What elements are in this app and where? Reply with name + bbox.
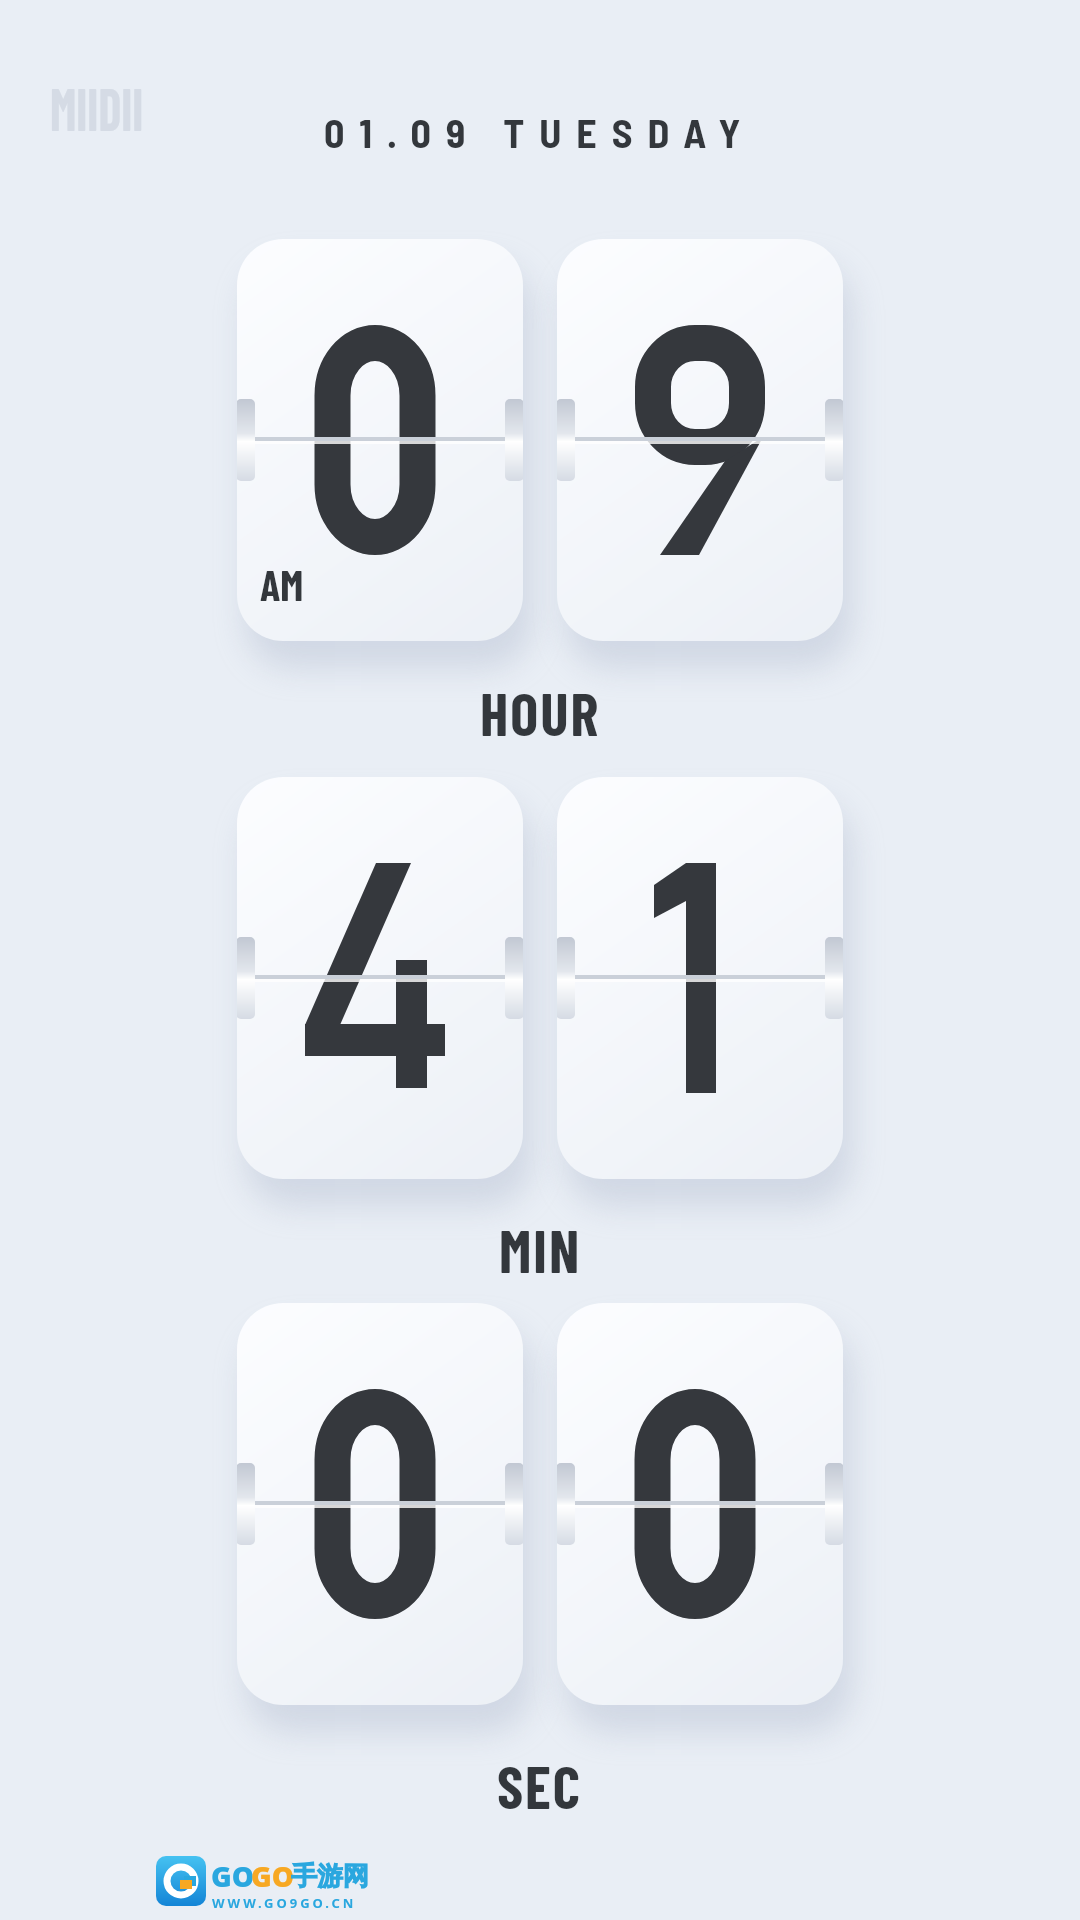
staticText: SEC [497, 1750, 583, 1821]
staticText: 01.09 TUESDAY [324, 108, 756, 156]
button[interactable] [557, 1303, 843, 1705]
staticText: WWW.GO9GO.CN [212, 1894, 357, 1912]
staticText: MIIDII [50, 71, 144, 143]
button[interactable] [237, 777, 523, 1179]
staticText: MIN [499, 1214, 582, 1285]
button[interactable] [557, 239, 843, 641]
staticText: GO [211, 1857, 255, 1895]
button[interactable] [237, 1303, 523, 1705]
button[interactable] [557, 777, 843, 1179]
staticText: HOUR [480, 677, 601, 748]
button[interactable]: AM [237, 239, 523, 641]
staticText: GO [251, 1857, 295, 1895]
staticText: 手游网 [291, 1860, 369, 1893]
staticText: AM [260, 559, 304, 609]
button[interactable] [156, 1856, 206, 1906]
